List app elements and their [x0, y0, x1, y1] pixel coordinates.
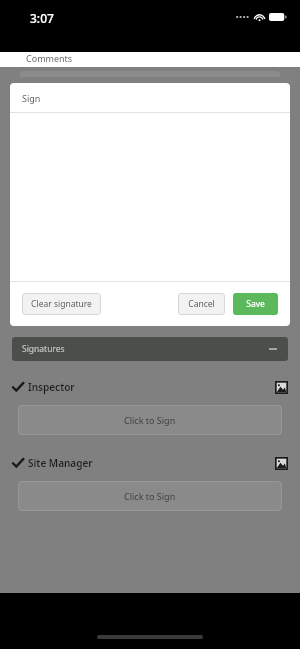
button[interactable]: Click to Sign [18, 481, 282, 511]
button[interactable]: Click to Sign [18, 405, 282, 435]
other: Collapse Signatures [268, 344, 278, 354]
staticText: Sign [22, 92, 41, 104]
staticText: Clear signature [31, 298, 92, 310]
staticText: Signatures [22, 343, 65, 355]
button[interactable]: Cancel [178, 293, 225, 315]
staticText: Comments [26, 52, 73, 64]
staticText: Save [246, 298, 265, 310]
button[interactable]: View Site Manager signature image [274, 456, 288, 470]
staticText: Cancel [188, 298, 215, 310]
staticText: Click to Sign [124, 490, 176, 502]
button[interactable]: Clear signature [22, 293, 101, 315]
staticText: Click to Sign [124, 414, 176, 426]
button[interactable]: Signatures [12, 337, 288, 361]
staticText: Inspector [28, 380, 75, 394]
button[interactable]: Save [233, 293, 278, 315]
button[interactable]: View Inspector signature image [274, 380, 288, 394]
staticText: Site Manager [28, 456, 93, 470]
staticText: 3:07 [30, 10, 54, 26]
